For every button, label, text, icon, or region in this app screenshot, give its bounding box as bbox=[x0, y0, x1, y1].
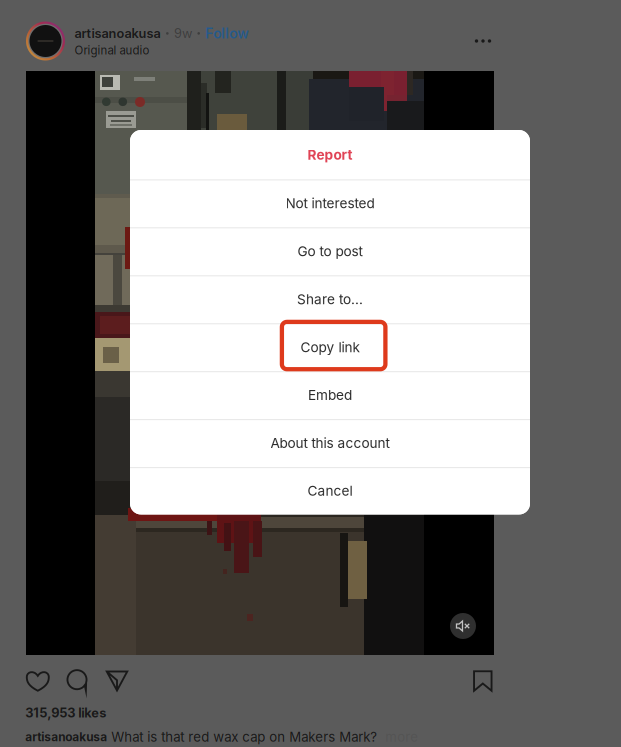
staticText: What is that red wax cap on Makers Mark? bbox=[107, 729, 377, 745]
staticText: Embed bbox=[308, 387, 352, 403]
button[interactable]: Unmute bbox=[448, 611, 478, 641]
staticText: Cancel bbox=[307, 482, 352, 499]
button[interactable]: More options bbox=[467, 27, 499, 55]
staticText: Copy link bbox=[300, 339, 359, 355]
staticText: 315,953 likes bbox=[25, 705, 106, 720]
staticText: Report bbox=[307, 146, 352, 163]
staticText: Go to post bbox=[297, 243, 362, 260]
button[interactable]: 315,953 likes bbox=[25, 705, 106, 720]
button[interactable]: artisanoakusa bbox=[25, 730, 107, 744]
button[interactable]: Original audio bbox=[75, 42, 150, 58]
button[interactable]: Not interested bbox=[130, 179, 530, 227]
button[interactable]: Comment bbox=[62, 666, 92, 694]
button[interactable]: Like bbox=[23, 667, 53, 695]
button[interactable]: Follow bbox=[205, 25, 249, 42]
button[interactable]: Share bbox=[102, 667, 132, 695]
button[interactable]: About this account bbox=[130, 419, 530, 467]
staticText: artisanoakusa bbox=[75, 26, 161, 41]
button[interactable]: Go to post bbox=[130, 227, 530, 275]
button[interactable]: Share to... bbox=[130, 275, 530, 323]
staticText: About this account bbox=[270, 435, 389, 451]
button[interactable]: Copy link bbox=[130, 323, 530, 371]
staticText: 9w bbox=[174, 26, 192, 41]
staticText: artisanoakusa bbox=[25, 730, 107, 744]
staticText: Original audio bbox=[75, 43, 150, 57]
button[interactable]: Save bbox=[468, 667, 498, 695]
button[interactable]: Report bbox=[130, 130, 530, 179]
button[interactable]: artisanoakusa profile photo bbox=[25, 21, 65, 61]
staticText: Share to... bbox=[297, 291, 363, 307]
button[interactable]: artisanoakusa bbox=[75, 26, 161, 41]
staticText: Not interested bbox=[285, 195, 374, 212]
button[interactable]: Cancel bbox=[130, 467, 530, 514]
button[interactable]: Embed bbox=[130, 371, 530, 419]
staticText: Follow bbox=[205, 25, 249, 42]
